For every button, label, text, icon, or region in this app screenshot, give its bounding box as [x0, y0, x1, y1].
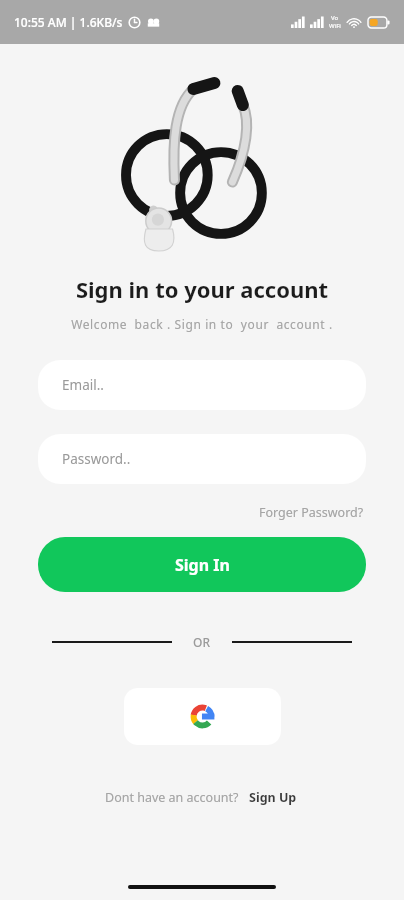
staticText: Sign Up — [249, 789, 297, 806]
button[interactable]: Forger Password? — [257, 502, 366, 523]
staticText: OR — [193, 634, 210, 650]
staticText: Email.. — [62, 376, 104, 394]
staticText: Dont have an account? — [105, 789, 239, 806]
staticText: WiFi — [329, 22, 341, 30]
button[interactable]: Email.. — [38, 360, 366, 410]
staticText: Password.. — [62, 450, 131, 468]
button[interactable]: Sign in with Google — [124, 688, 281, 745]
staticText: Vo — [331, 14, 339, 22]
staticText: 10:55 AM | 1.6KB/s — [14, 14, 123, 30]
button[interactable]: Password.. — [38, 434, 366, 484]
button[interactable]: Sign Up — [247, 787, 299, 808]
staticText: Sign In — [175, 554, 230, 576]
staticText: Forger Password? — [259, 504, 364, 521]
staticText: Welcome back . Sign in to your account . — [0, 316, 404, 332]
button[interactable]: Sign In — [38, 537, 366, 592]
staticText: Sign in to your account — [0, 274, 404, 304]
